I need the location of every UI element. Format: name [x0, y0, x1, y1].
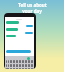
- staticText: Tell us about: [18, 2, 47, 8]
- staticText: your day: [22, 8, 42, 14]
- button[interactable]: [22, 60, 24, 63]
- button[interactable]: [31, 60, 33, 63]
- button[interactable]: [6, 68, 9, 69]
- button[interactable]: [6, 21, 19, 24]
- button[interactable]: [25, 64, 27, 67]
- button[interactable]: [6, 60, 7, 63]
- button[interactable]: [10, 60, 12, 63]
- button[interactable]: [28, 60, 30, 63]
- button[interactable]: [26, 25, 33, 27]
- button[interactable]: [13, 64, 15, 67]
- button[interactable]: [25, 32, 33, 34]
- button[interactable]: [25, 60, 27, 63]
- button[interactable]: [22, 64, 24, 67]
- button[interactable]: [6, 35, 16, 37]
- staticText: Today: [16, 18, 23, 21]
- button[interactable]: [31, 64, 33, 67]
- button[interactable]: [10, 64, 12, 67]
- button[interactable]: [8, 64, 9, 67]
- button[interactable]: [19, 60, 21, 63]
- button[interactable]: [19, 64, 21, 67]
- button[interactable]: [28, 64, 30, 67]
- button[interactable]: [6, 28, 18, 31]
- button[interactable]: Send: [27, 57, 30, 60]
- button[interactable]: [6, 64, 7, 67]
- button[interactable]: [16, 60, 18, 63]
- button[interactable]: [13, 60, 15, 63]
- button[interactable]: [16, 64, 18, 67]
- button[interactable]: [8, 60, 9, 63]
- button[interactable]: [6, 50, 31, 53]
